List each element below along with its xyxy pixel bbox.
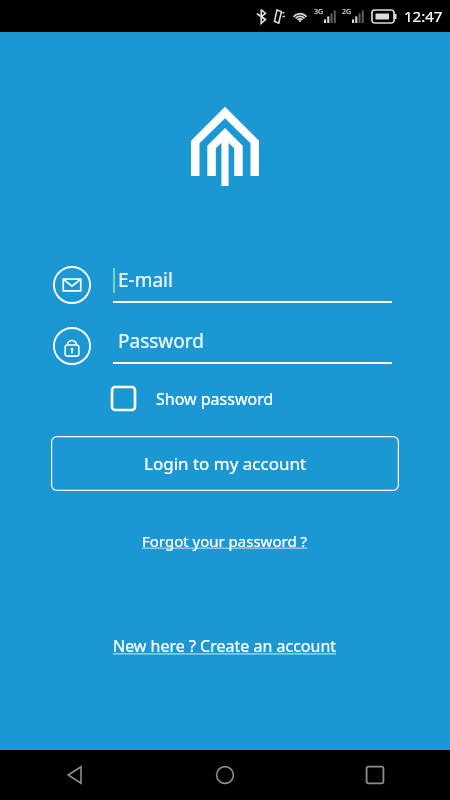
button[interactable]: Show password: [112, 387, 274, 410]
button[interactable]: Recent apps: [300, 750, 450, 800]
staticText: New here ? Create an account: [113, 635, 337, 657]
staticText: Login to my account: [144, 452, 307, 475]
other: E-mail: [53, 266, 91, 304]
staticText: Password: [118, 328, 204, 354]
button[interactable]: Back: [0, 750, 150, 800]
button[interactable]: Home: [150, 750, 300, 800]
button[interactable]: Password: [0, 327, 450, 365]
button[interactable]: Forgot your password ?: [138, 529, 312, 553]
staticText: 2G: [342, 7, 352, 17]
staticText: Forgot your password ?: [142, 531, 308, 551]
button[interactable]: Login to my account: [51, 436, 399, 491]
staticText: 12:47: [404, 6, 443, 26]
staticText: E-mail: [118, 267, 173, 293]
staticText: 3G: [314, 7, 324, 17]
staticText: Show password: [156, 388, 274, 410]
button[interactable]: New here ? Create an account: [109, 633, 341, 659]
other: Password: [53, 327, 91, 365]
button[interactable]: E-mail: [0, 266, 450, 304]
